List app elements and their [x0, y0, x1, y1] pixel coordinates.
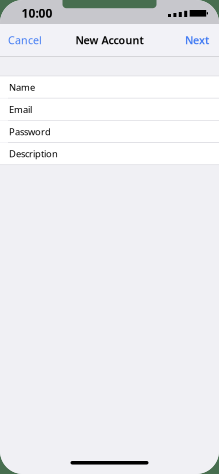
staticText: Cancel	[8, 33, 42, 47]
staticText: Email	[9, 103, 32, 116]
staticText: New Account	[75, 33, 143, 47]
staticText: Name	[9, 81, 35, 93]
button[interactable]: Description	[0, 143, 219, 164]
button[interactable]: Password	[0, 121, 219, 142]
button[interactable]: Name	[0, 76, 219, 98]
button[interactable]: Cancel	[8, 33, 42, 47]
staticText: Description	[9, 148, 58, 160]
staticText: Password	[9, 125, 51, 138]
button[interactable]: Next	[185, 33, 209, 47]
button[interactable]: Email	[0, 99, 219, 120]
staticText: Next	[185, 33, 209, 47]
staticText: 10:00	[21, 5, 52, 21]
